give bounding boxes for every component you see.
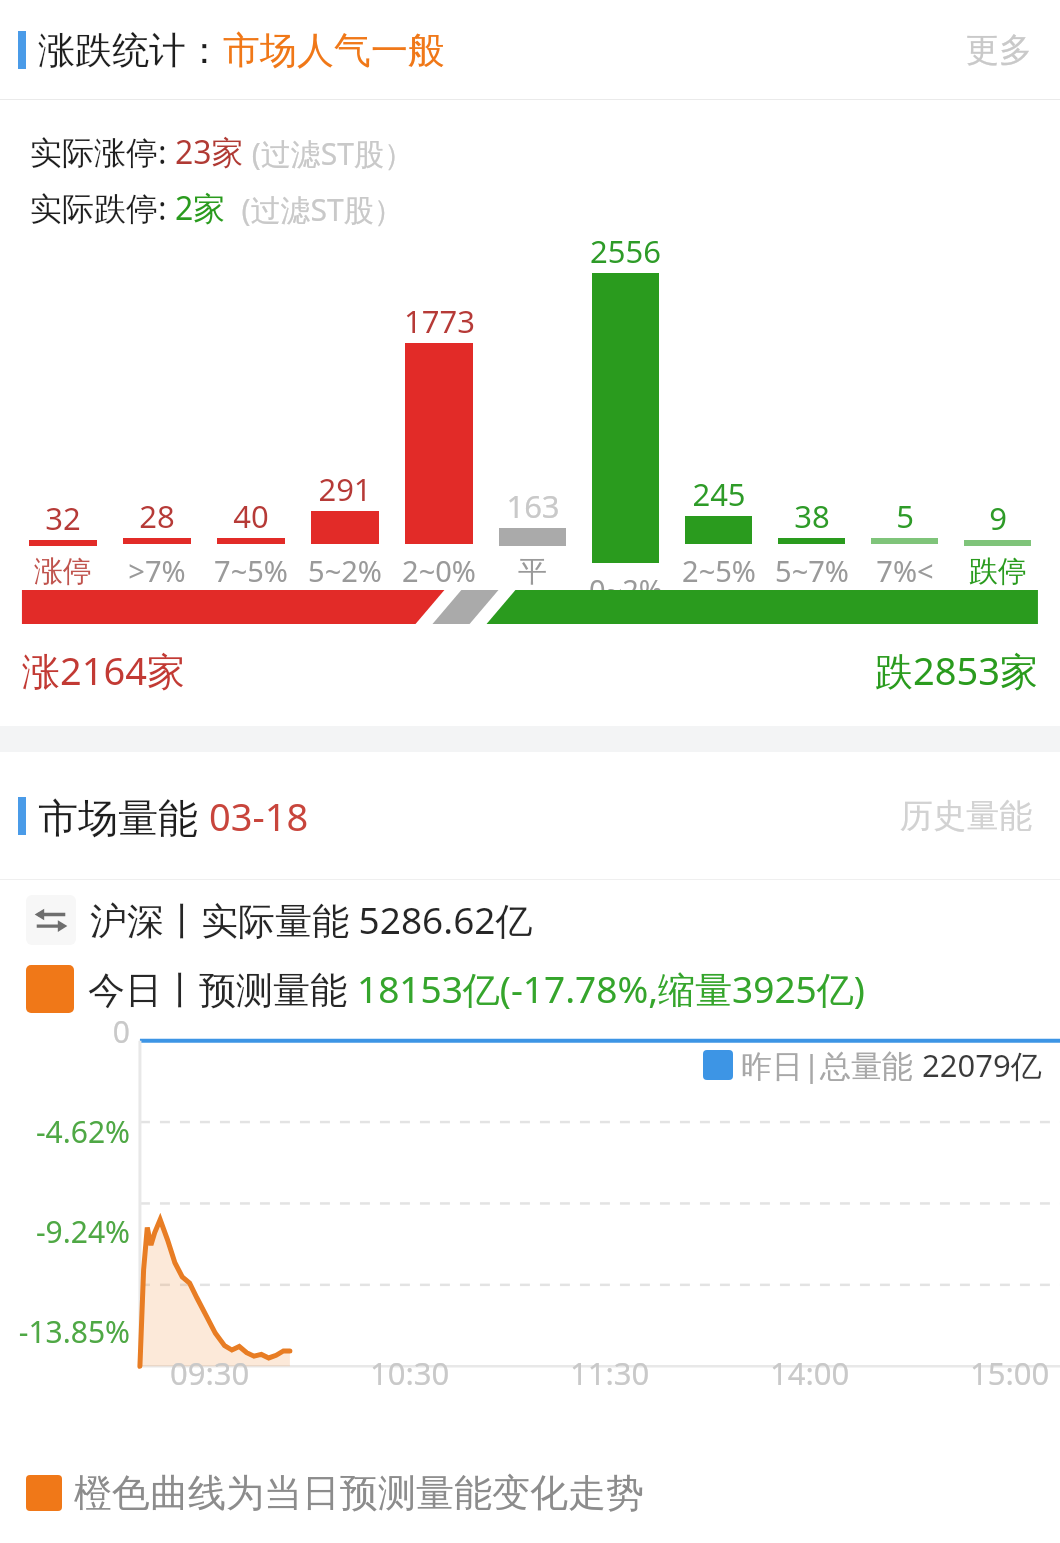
staticText: 涨停 [34, 553, 92, 590]
staticText: 实际涨停: [30, 130, 175, 174]
staticText: 5~2% [308, 551, 382, 590]
staticText: 9 [989, 497, 1007, 539]
staticText: 10:30 [370, 1352, 450, 1394]
staticText: 实际跌停: [30, 186, 175, 230]
staticText: 291 [318, 468, 372, 510]
staticText: 40 [233, 495, 269, 537]
staticText: 03-18 [209, 790, 309, 842]
staticText: 5~7% [775, 551, 849, 590]
staticText: 2家 [175, 186, 226, 230]
staticText: >7% [128, 551, 186, 590]
staticText: -9.24% [0, 1211, 130, 1252]
staticText: 市场人气一般 [223, 27, 445, 74]
staticText: 今日丨预测量能 [88, 963, 357, 1014]
button[interactable]: 更多 [962, 21, 1036, 79]
staticText: (过滤ST股） [226, 189, 404, 230]
staticText: 18153亿(-17.78%,缩量3925亿) [357, 963, 865, 1014]
staticText: 涨跌统计： [38, 27, 223, 74]
staticText: 1773 [404, 300, 475, 342]
staticText: 平 [518, 553, 547, 590]
other: 切换 [26, 895, 76, 945]
staticText: 市场量能 [38, 789, 209, 844]
staticText: 28 [139, 495, 175, 537]
staticText: 跌停 [969, 553, 1027, 590]
staticText: 09:30 [170, 1352, 250, 1394]
staticText: 0 [0, 1011, 130, 1052]
staticText: 涨2164家 [22, 644, 185, 696]
staticText: 15:00 [970, 1352, 1050, 1394]
staticText: 7~5% [214, 551, 288, 590]
staticText: 32 [45, 497, 81, 539]
staticText: 38 [794, 495, 830, 537]
button[interactable]: 切换 [26, 894, 533, 945]
staticText: 历史量能 [900, 795, 1032, 837]
staticText: (过滤ST股） [244, 133, 414, 174]
staticText: 11:30 [570, 1352, 650, 1394]
staticText: 14:00 [770, 1352, 850, 1394]
staticText: 跌2853家 [875, 644, 1038, 696]
staticText: 22079亿 [922, 1044, 1042, 1086]
staticText: 2~5% [682, 551, 756, 590]
staticText: 2~0% [402, 551, 476, 590]
staticText: -13.85% [0, 1311, 130, 1352]
staticText: -4.62% [0, 1111, 130, 1152]
staticText: 163 [506, 485, 560, 527]
staticText: 沪深丨实际量能 5286.62亿 [90, 894, 533, 945]
staticText: 5 [896, 495, 914, 537]
staticText: 2556 [590, 230, 661, 272]
staticText: 245 [692, 473, 746, 515]
staticText: 橙色曲线为当日预测量能变化走势 [74, 1469, 644, 1517]
staticText: 昨日|总量能 [741, 1044, 922, 1086]
staticText: 23家 [175, 130, 244, 174]
staticText: 7%< [876, 551, 934, 590]
staticText: 0~2% [589, 570, 663, 590]
staticText: 更多 [966, 29, 1032, 71]
button[interactable]: 历史量能 [896, 787, 1036, 845]
